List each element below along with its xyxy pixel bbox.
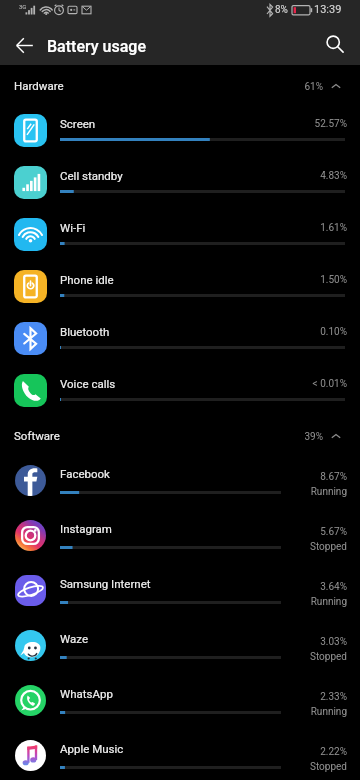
staticText: Stopped [247, 541, 347, 553]
staticText: Instagram [60, 522, 112, 535]
staticText: Voice calls [60, 377, 116, 390]
button[interactable]: Screen [0, 103, 360, 155]
staticText: Battery usage [47, 37, 146, 56]
staticText: Cell standby [60, 169, 123, 182]
button[interactable]: Samsung Internet [0, 563, 360, 618]
staticText: Stopped [247, 761, 347, 773]
staticText: 2.22% [247, 746, 347, 758]
staticText: Waze [60, 632, 88, 645]
staticText: 3G [19, 3, 27, 10]
staticText: Hardware [14, 79, 64, 92]
staticText: 4.83% [247, 170, 347, 182]
staticText: 1.50% [247, 274, 347, 286]
button[interactable]: Instagram [0, 508, 360, 563]
staticText: WhatsApp [60, 687, 113, 700]
staticText: 0.10% [247, 326, 347, 338]
staticText: Software [14, 429, 60, 442]
staticText: 5.67% [247, 526, 347, 538]
button[interactable]: Wi-Fi [0, 207, 360, 259]
button[interactable]: WhatsApp [0, 673, 360, 728]
button[interactable]: Bluetooth [0, 311, 360, 363]
staticText: 39% [223, 431, 323, 443]
staticText: Facebook [60, 467, 110, 480]
button[interactable]: Software [0, 415, 360, 453]
staticText: Running [247, 596, 347, 608]
button[interactable]: Search [319, 28, 351, 60]
staticText: Screen [60, 117, 96, 130]
staticText: 52.57% [247, 118, 347, 130]
button[interactable]: Cell standby [0, 155, 360, 207]
staticText: 2.33% [247, 691, 347, 703]
staticText: 61% [223, 81, 323, 93]
button[interactable]: Hardware [0, 65, 360, 103]
staticText: Wi-Fi [60, 221, 86, 234]
staticText: < 0.01% [247, 378, 347, 390]
button[interactable]: Waze [0, 618, 360, 673]
staticText: 1.61% [247, 222, 347, 234]
staticText: 8% [275, 4, 288, 16]
staticText: 3.03% [247, 636, 347, 648]
staticText: 13:39 [314, 3, 342, 16]
staticText: Phone idle [60, 273, 114, 286]
button[interactable]: Voice calls [0, 363, 360, 415]
button[interactable]: Facebook [0, 453, 360, 508]
staticText: Samsung Internet [60, 577, 151, 590]
staticText: Running [247, 706, 347, 718]
button[interactable]: Back [8, 29, 40, 61]
staticText: Apple Music [60, 742, 124, 755]
staticText: Running [247, 486, 347, 498]
staticText: 8.67% [247, 471, 347, 483]
staticText: Bluetooth [60, 325, 110, 338]
button[interactable]: Phone idle [0, 259, 360, 311]
staticText: Stopped [247, 651, 347, 663]
staticText: 3.64% [247, 581, 347, 593]
button[interactable]: Apple Music [0, 728, 360, 780]
